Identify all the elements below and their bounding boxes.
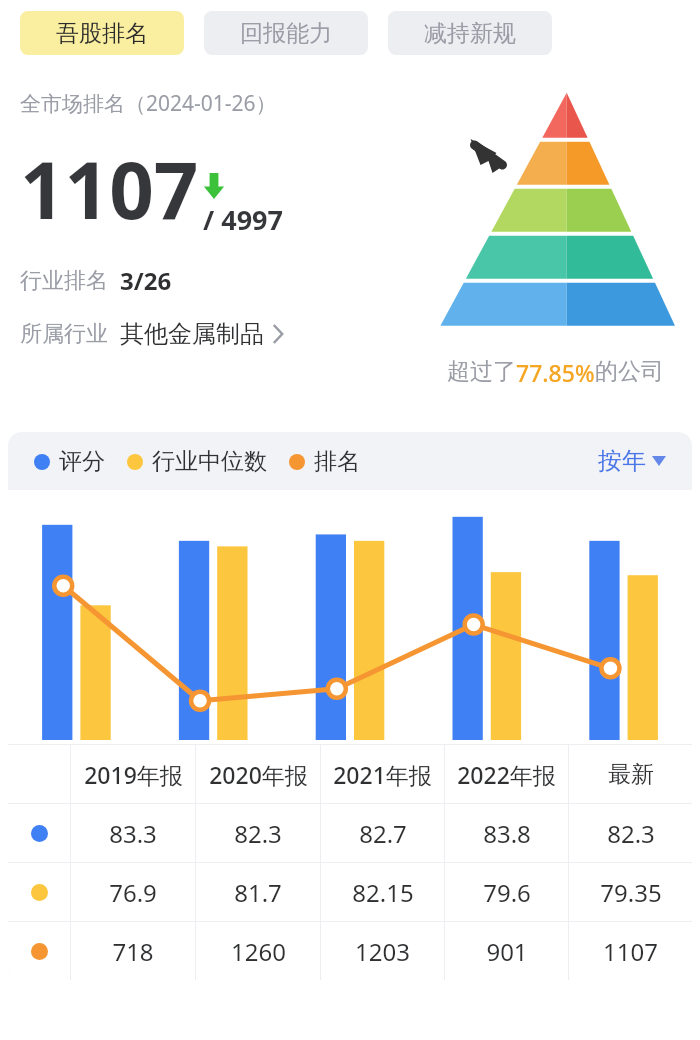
staticText: 评分: [59, 447, 105, 476]
staticText: 718: [112, 935, 154, 968]
staticText: 1260: [231, 935, 286, 968]
staticText: / 4997: [203, 201, 284, 238]
staticText: 超过了: [447, 357, 516, 386]
staticText: 行业排名: [20, 267, 108, 295]
staticText: 82.15: [352, 876, 414, 909]
button[interactable]: 评分: [34, 447, 105, 476]
staticText: 82.3: [234, 817, 282, 850]
button[interactable]: 吾股排名: [20, 11, 184, 55]
staticText: 2021年报: [333, 759, 432, 790]
staticText: 2019年报: [84, 759, 183, 790]
staticText: 最新: [608, 760, 654, 789]
staticText: 83.8: [483, 817, 531, 850]
staticText: 1107: [603, 935, 658, 968]
button[interactable]: 行业中位数: [127, 447, 267, 476]
staticText: 2020年报: [209, 759, 308, 790]
staticText: 83.3: [109, 817, 157, 850]
staticText: 的公司: [595, 357, 664, 386]
staticText: 1203: [355, 935, 410, 968]
staticText: 其他金属制品: [120, 319, 264, 349]
staticText: 81.7: [234, 876, 282, 909]
staticText: 全市场排名（2024-01-26）: [20, 89, 277, 118]
button[interactable]: 排名: [289, 447, 360, 476]
button[interactable]: 所属行业: [20, 319, 284, 349]
button[interactable]: 减持新规: [388, 11, 552, 55]
staticText: 3/26: [120, 264, 172, 297]
staticText: 减持新规: [424, 19, 516, 48]
staticText: 行业中位数: [152, 447, 267, 476]
staticText: 76.9: [109, 876, 157, 909]
staticText: 77.85%: [516, 357, 595, 388]
staticText: 回报能力: [240, 19, 332, 48]
staticText: 82.3: [607, 817, 655, 850]
staticText: 按年: [598, 446, 646, 476]
staticText: 吾股排名: [56, 19, 148, 48]
button[interactable]: 回报能力: [204, 11, 368, 55]
staticText: 所属行业: [20, 320, 108, 348]
staticText: 79.6: [483, 876, 531, 909]
staticText: 1107: [20, 136, 199, 242]
staticText: 901: [486, 935, 528, 968]
button[interactable]: 按年: [598, 446, 666, 476]
staticText: 排名: [314, 447, 360, 476]
staticText: 79.35: [600, 876, 662, 909]
staticText: 82.7: [359, 817, 407, 850]
staticText: 2022年报: [457, 759, 556, 790]
